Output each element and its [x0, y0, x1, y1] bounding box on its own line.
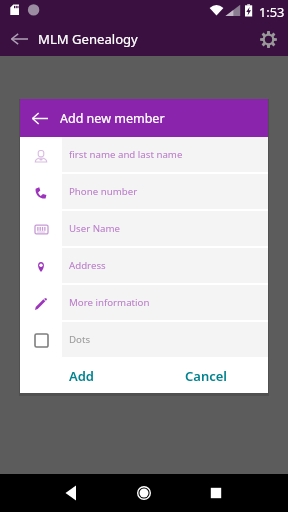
button[interactable]: first name and last name	[20, 137, 268, 174]
button[interactable]: Back	[0, 22, 38, 56]
button[interactable]: More information	[20, 285, 268, 322]
staticText: Cancel	[185, 367, 228, 385]
button[interactable]: Address	[20, 248, 268, 285]
button[interactable]: Cancel	[144, 359, 268, 393]
staticText: Address	[69, 259, 106, 272]
button[interactable]: Back	[0, 474, 96, 512]
button[interactable]: Close	[20, 99, 60, 137]
staticText: Add	[69, 367, 95, 385]
button[interactable]: Recent apps	[192, 474, 288, 512]
staticText: Phone number	[69, 185, 138, 198]
staticText: MLM Genealogy	[38, 30, 138, 48]
staticText: 1:53	[259, 3, 285, 20]
staticText: User Name	[69, 222, 121, 235]
staticText: Dots	[69, 333, 91, 346]
button[interactable]: Phone number	[20, 174, 268, 211]
button[interactable]: User Name	[20, 211, 268, 248]
button[interactable]: Dots	[20, 322, 268, 359]
button[interactable]: Add	[20, 359, 144, 393]
staticText: Add new member	[60, 110, 165, 127]
button[interactable]: Home	[96, 474, 192, 512]
button[interactable]: Settings	[248, 22, 288, 56]
staticText: More information	[69, 296, 150, 309]
staticText: first name and last name	[69, 148, 183, 161]
